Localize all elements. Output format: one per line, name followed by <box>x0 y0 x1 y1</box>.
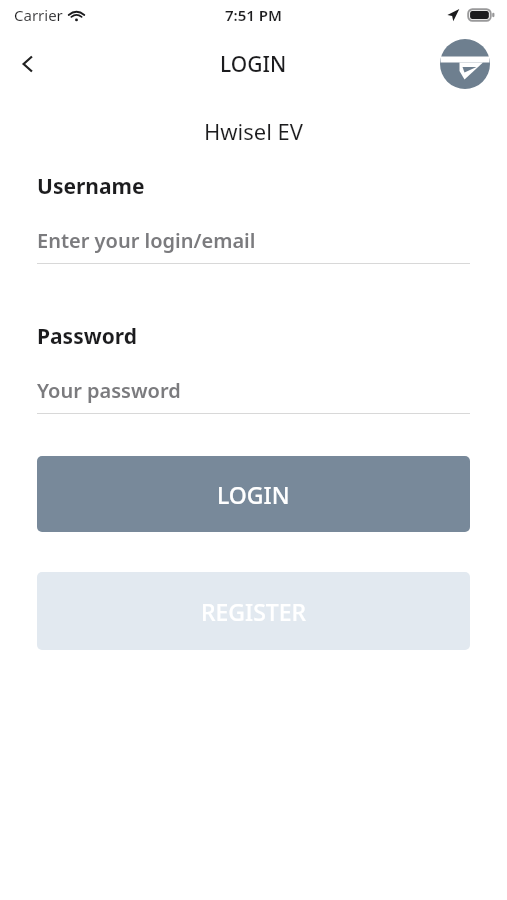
button[interactable]: REGISTER <box>37 572 470 650</box>
staticText: Enter your login/email <box>37 227 256 254</box>
staticText: LOGIN <box>220 50 287 79</box>
button[interactable]: App logo <box>439 38 491 90</box>
staticText: Hwisel EV <box>0 116 507 146</box>
staticText: 7:51 PM <box>225 5 282 25</box>
button[interactable]: Your password <box>37 373 470 407</box>
button[interactable]: LOGIN <box>37 456 470 532</box>
staticText: Carrier <box>14 5 63 25</box>
staticText: Password <box>37 322 138 351</box>
staticText: LOGIN <box>217 479 290 510</box>
staticText: REGISTER <box>201 596 307 627</box>
button[interactable]: Enter your login/email <box>37 223 470 257</box>
staticText: Your password <box>37 377 181 404</box>
button[interactable]: Back <box>6 42 50 86</box>
staticText: Username <box>37 172 145 201</box>
